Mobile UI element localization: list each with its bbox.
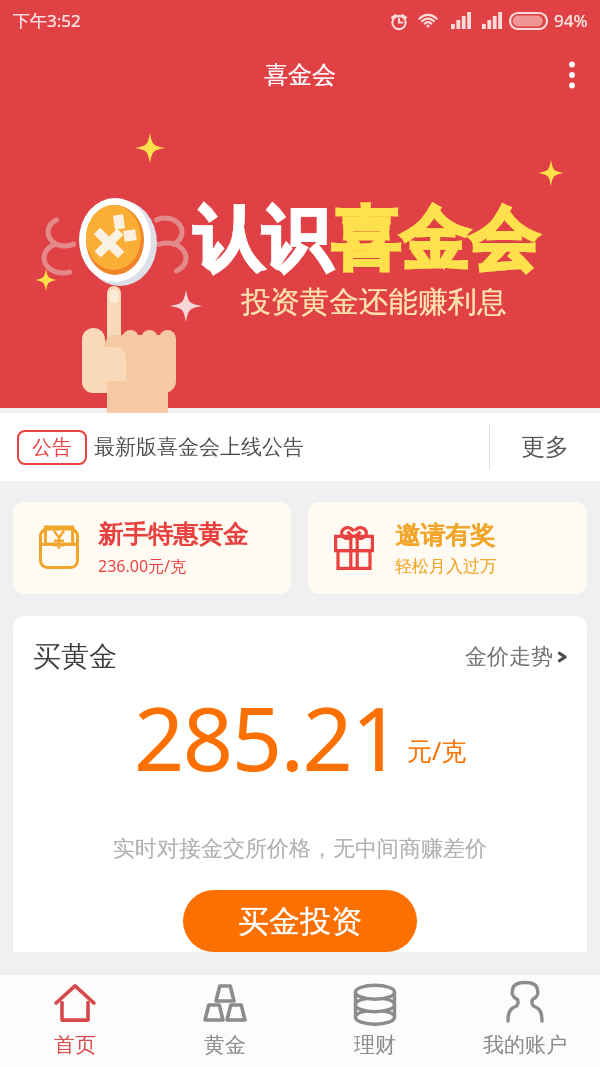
staticText: 理财 <box>354 1032 396 1058</box>
staticText: 最新版喜金会上线公告 <box>94 434 304 460</box>
button[interactable]: 邀请有奖 <box>308 502 587 594</box>
button[interactable]: More options <box>544 40 600 110</box>
staticText: 买金投资 <box>238 902 362 941</box>
staticText: 285.21 <box>134 677 401 797</box>
staticText: 认识 <box>193 197 331 284</box>
staticText: 买黄金 <box>33 639 117 674</box>
staticText: 公告 <box>32 435 72 460</box>
staticText: 黄金 <box>204 1032 246 1058</box>
button[interactable]: 首页 <box>0 975 150 1067</box>
staticText: 94% <box>554 9 588 32</box>
button[interactable]: 我的账户 <box>450 975 600 1067</box>
staticText: 投资黄金还能赚利息 <box>241 284 507 321</box>
button[interactable]: 公告 <box>0 413 600 481</box>
button[interactable]: 买金投资 <box>183 890 417 952</box>
button[interactable]: 理财 <box>300 975 450 1067</box>
staticText: 轻松月入过万 <box>395 556 497 577</box>
staticText: 邀请有奖 <box>395 520 495 551</box>
staticText: 元/克 <box>407 733 467 767</box>
button[interactable]: 更多 <box>489 413 600 481</box>
button[interactable]: 黄金 <box>150 975 300 1067</box>
staticText: 我的账户 <box>483 1032 567 1058</box>
staticText: 下午3:52 <box>13 9 81 32</box>
staticText: 236.00元/克 <box>98 555 187 577</box>
button[interactable]: 金价走势 <box>465 643 570 671</box>
staticText: 更多 <box>521 432 569 462</box>
staticText: 实时对接金交所价格，无中间商赚差价 <box>13 835 587 863</box>
staticText: 金价走势 <box>465 643 553 671</box>
staticText: 首页 <box>54 1032 96 1058</box>
staticText: 新手特惠黄金 <box>98 519 248 550</box>
staticText: 喜金会 <box>264 60 336 90</box>
button[interactable]: 新手特惠黄金 <box>13 502 291 594</box>
staticText: 喜金会 <box>331 197 538 284</box>
